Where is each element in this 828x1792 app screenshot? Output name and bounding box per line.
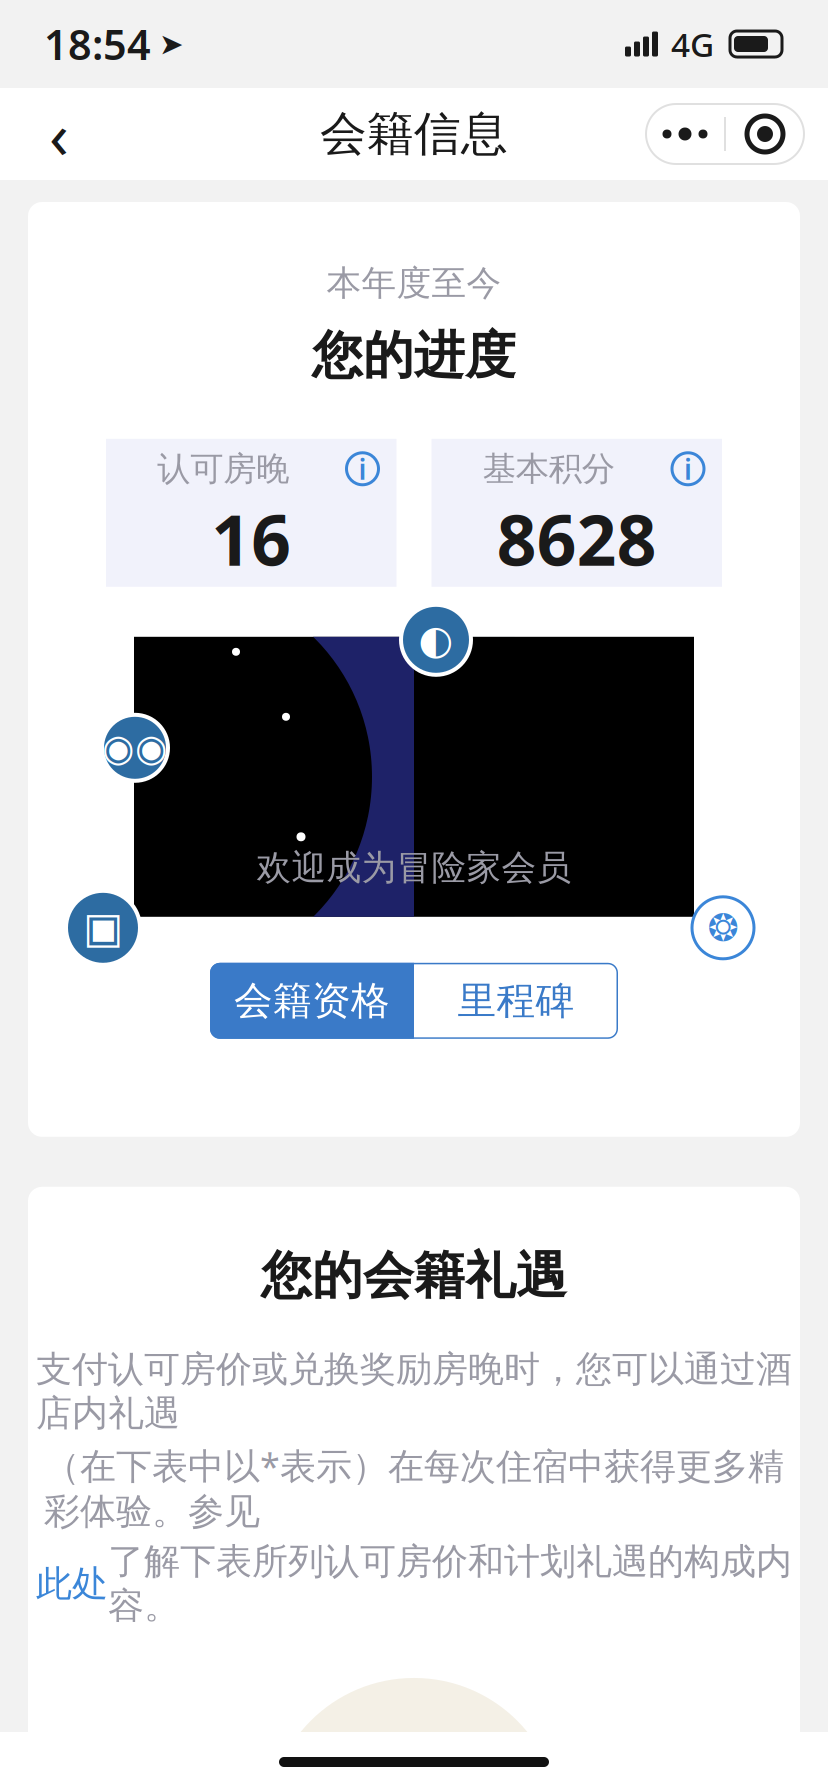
staticText: 此处 [36, 1562, 108, 1606]
button[interactable]: 里程碑 [414, 963, 618, 1039]
staticText: ➤ [159, 27, 184, 61]
staticText: 会籍资格 [234, 977, 390, 1025]
staticText: ◐ [418, 617, 453, 662]
staticText: 会籍信息 [320, 105, 508, 163]
staticText: ▣ [380, 1754, 448, 1792]
staticText: i [684, 450, 692, 487]
staticText: ‹ [49, 91, 69, 176]
staticText: 了解下表所列认可房价和计划礼遇的构成内容。 [108, 1539, 792, 1628]
button[interactable]: 更多 [646, 105, 724, 163]
button[interactable]: 返回 [24, 99, 94, 169]
staticText: i [358, 450, 366, 487]
staticText: 18:54 [44, 17, 151, 71]
staticText: 本年度至今 [326, 262, 501, 305]
staticText: 8628 [497, 493, 657, 585]
staticText: （在下表中以*表示）在每次住宿中获得更多精彩体验。参见 [44, 1441, 784, 1533]
button[interactable]: 会籍资格 [210, 963, 414, 1039]
staticText: 认可房晚 [157, 448, 289, 489]
button[interactable]: 基本积分说明 [666, 447, 710, 491]
staticText: ▣ [83, 904, 123, 952]
staticText: ◉◉ [102, 727, 168, 769]
staticText: 欢迎成为冒险家会员 [256, 846, 571, 889]
button[interactable]: 关闭 [726, 105, 804, 163]
staticText: 16 [211, 493, 291, 585]
staticText: ❂ [707, 907, 738, 949]
staticText: 您的进度 [312, 325, 516, 387]
staticText: 4G [671, 22, 714, 66]
button[interactable]: 认可房晚说明 [340, 447, 384, 491]
staticText: 您的会籍礼遇 [261, 1245, 567, 1307]
staticText: 里程碑 [457, 977, 574, 1025]
button[interactable]: 此处 [36, 1562, 108, 1606]
staticText: 支付认可房价或兑换奖励房晚时，您可以通过酒店内礼遇 [36, 1347, 792, 1435]
staticText: 基本积分 [483, 448, 615, 489]
